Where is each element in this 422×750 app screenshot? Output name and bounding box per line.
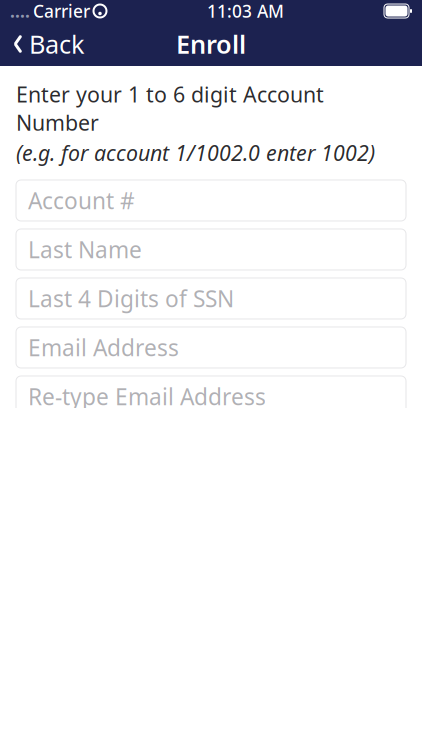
staticText: Re-type Email Address	[28, 381, 266, 411]
button[interactable]: Email Address	[16, 327, 406, 368]
staticText: (e.g. for account 1/1002.0 enter 1002)	[16, 139, 375, 167]
staticText: Last Name	[28, 234, 142, 264]
button[interactable]: Back	[0, 21, 85, 67]
staticText: Email Address	[28, 332, 179, 362]
staticText: Account #	[28, 185, 135, 215]
staticText: ....	[10, 0, 30, 22]
staticText: Last 4 Digits of SSN	[28, 283, 234, 313]
button[interactable]: Account #	[16, 180, 406, 221]
button[interactable]: Last Name	[16, 229, 406, 270]
staticText: Carrier	[33, 0, 90, 22]
staticText: Enroll	[176, 27, 246, 61]
staticText: Enter your 1 to 6 digit Account Number	[16, 80, 324, 137]
button[interactable]: Re-type Email Address	[16, 376, 406, 417]
staticText: Back	[29, 27, 85, 61]
staticText: 11:03 AM	[207, 0, 284, 22]
button[interactable]: Last 4 Digits of SSN	[16, 278, 406, 319]
